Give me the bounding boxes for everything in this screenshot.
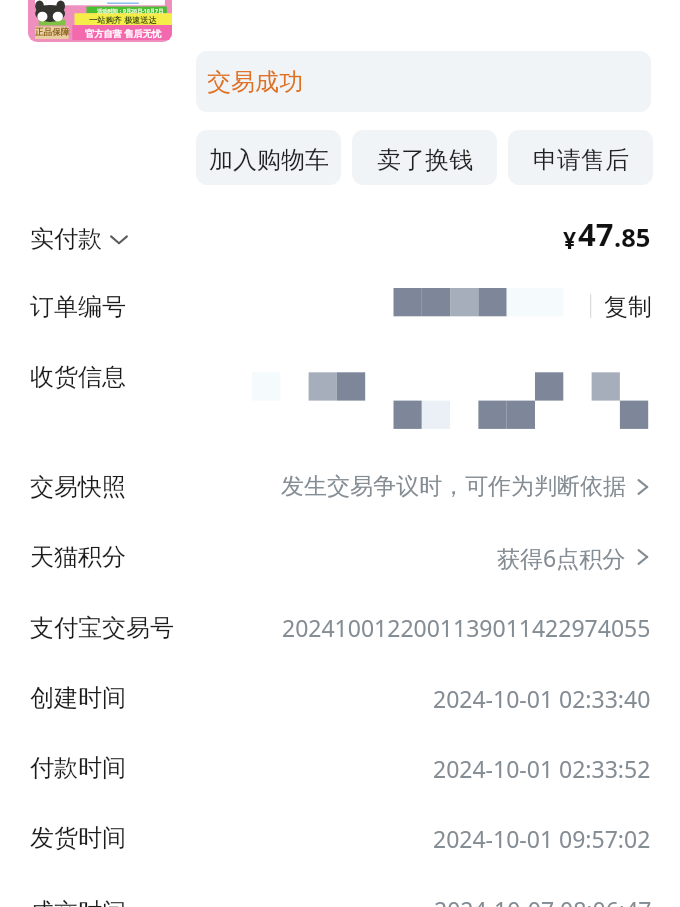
button[interactable]: 天猫积分 [0, 522, 680, 592]
button[interactable]: 成交时间 [0, 873, 680, 907]
button[interactable]: 支付宝交易号 [0, 592, 680, 663]
staticText: 订单编号 [30, 292, 126, 322]
staticText: 交易成功 [207, 67, 303, 97]
staticText: 支付宝交易号 [30, 613, 174, 643]
staticText: 付款时间 [30, 753, 126, 783]
staticText: 申请售后 [533, 145, 629, 175]
staticText: 创建时间 [30, 683, 126, 713]
button[interactable]: 付款时间 [0, 733, 680, 803]
staticText: ¥ [563, 224, 577, 255]
button[interactable]: 加入购物车 [196, 130, 341, 185]
staticText: 一站购齐 极速送达 [89, 14, 157, 25]
button[interactable]: 发货时间 [0, 803, 680, 873]
staticText: 成交时间 [30, 897, 126, 907]
button[interactable]: 交易快照 [0, 451, 680, 522]
staticText: 2024-10-01 02:33:40 [433, 683, 651, 714]
staticText: 官方自营 售后无忧 [85, 27, 161, 40]
staticText: 加入购物车 [209, 145, 329, 175]
button[interactable]: 复制 [601, 286, 655, 328]
button[interactable]: 卖了换钱 [352, 130, 497, 185]
staticText: 2024-10-07 08:06:47 [434, 894, 652, 907]
staticText: 交易快照 [30, 472, 126, 502]
staticText: 47 [578, 213, 614, 255]
staticText: 卖了换钱 [377, 145, 473, 175]
button[interactable]: 申请售后 [508, 130, 653, 185]
staticText: 活动时间：9月26日-10月7日 [97, 7, 164, 14]
staticText: 2024-10-01 09:57:02 [433, 823, 651, 854]
staticText: 天猫积分 [30, 542, 126, 572]
staticText: 正品保障 [35, 27, 70, 38]
staticText: 获得6点积分 [497, 542, 626, 573]
staticText: 复制 [604, 292, 652, 322]
staticText: 发货时间 [30, 823, 126, 853]
staticText: 2024-10-01 02:33:52 [433, 753, 651, 784]
button[interactable]: 实付款 [0, 206, 680, 271]
staticText: .85 [614, 220, 651, 255]
staticText: 收货信息 [30, 362, 126, 392]
button[interactable]: 交易成功 [196, 51, 651, 112]
button[interactable]: Product image [28, 0, 172, 42]
staticText: 发生交易争议时，可作为判断依据 [281, 472, 626, 501]
button[interactable]: 创建时间 [0, 663, 680, 733]
staticText: 实付款 [30, 224, 102, 254]
staticText: 2024100122001139011422974055 [282, 612, 651, 643]
